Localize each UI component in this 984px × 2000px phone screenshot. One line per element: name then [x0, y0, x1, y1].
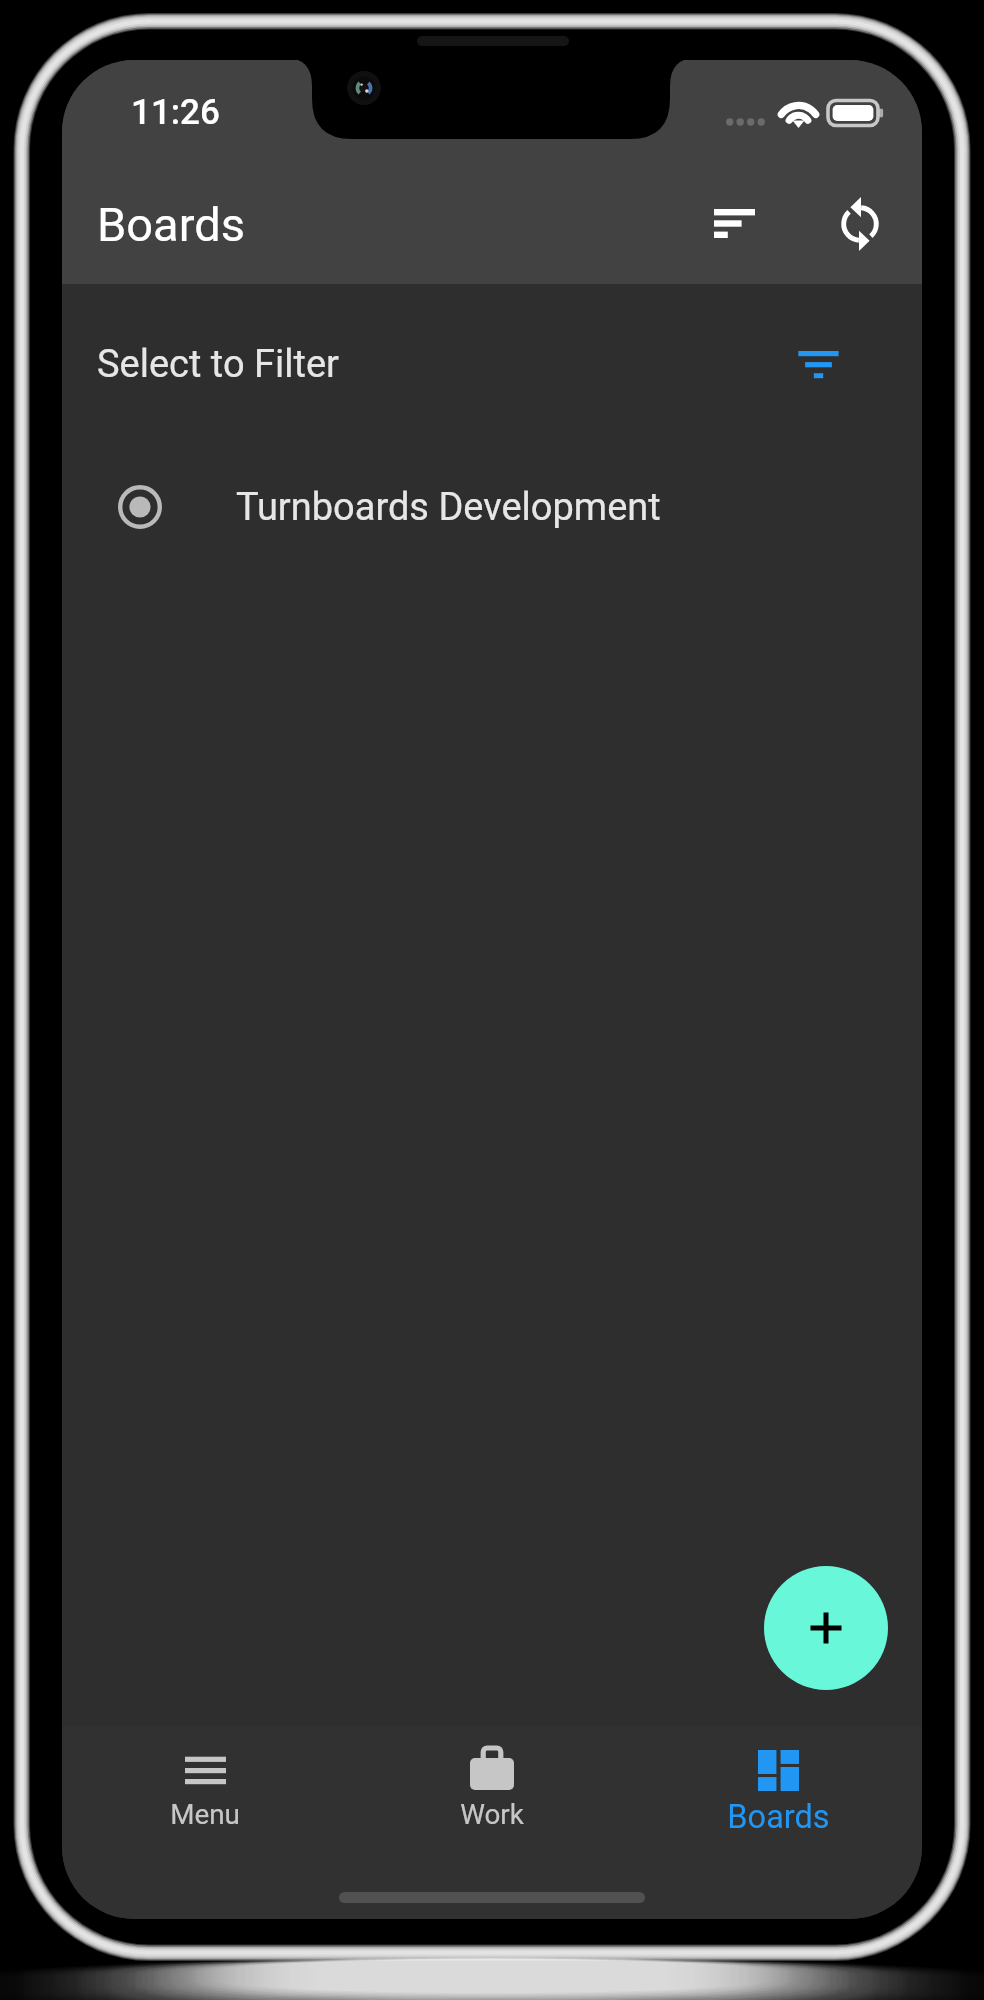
button[interactable]: Menu: [62, 1726, 348, 1796]
button[interactable]: Work: [348, 1726, 635, 1796]
button[interactable]: Refresh: [812, 176, 908, 272]
button[interactable]: Boards: [635, 1726, 922, 1796]
staticText: 11:26: [131, 92, 220, 133]
staticText: Boards: [97, 197, 245, 252]
button[interactable]: Turnboards Development: [62, 444, 922, 570]
button[interactable]: Add board: [764, 1566, 888, 1690]
staticText: Turnboards Development: [236, 485, 661, 530]
staticText: Select to Filter: [97, 342, 339, 387]
button[interactable]: Filter: [770, 317, 866, 413]
staticText: Boards: [727, 1798, 830, 1836]
staticText: Menu: [170, 1798, 240, 1831]
staticText: Work: [460, 1798, 524, 1831]
button[interactable]: Sort: [684, 175, 786, 271]
